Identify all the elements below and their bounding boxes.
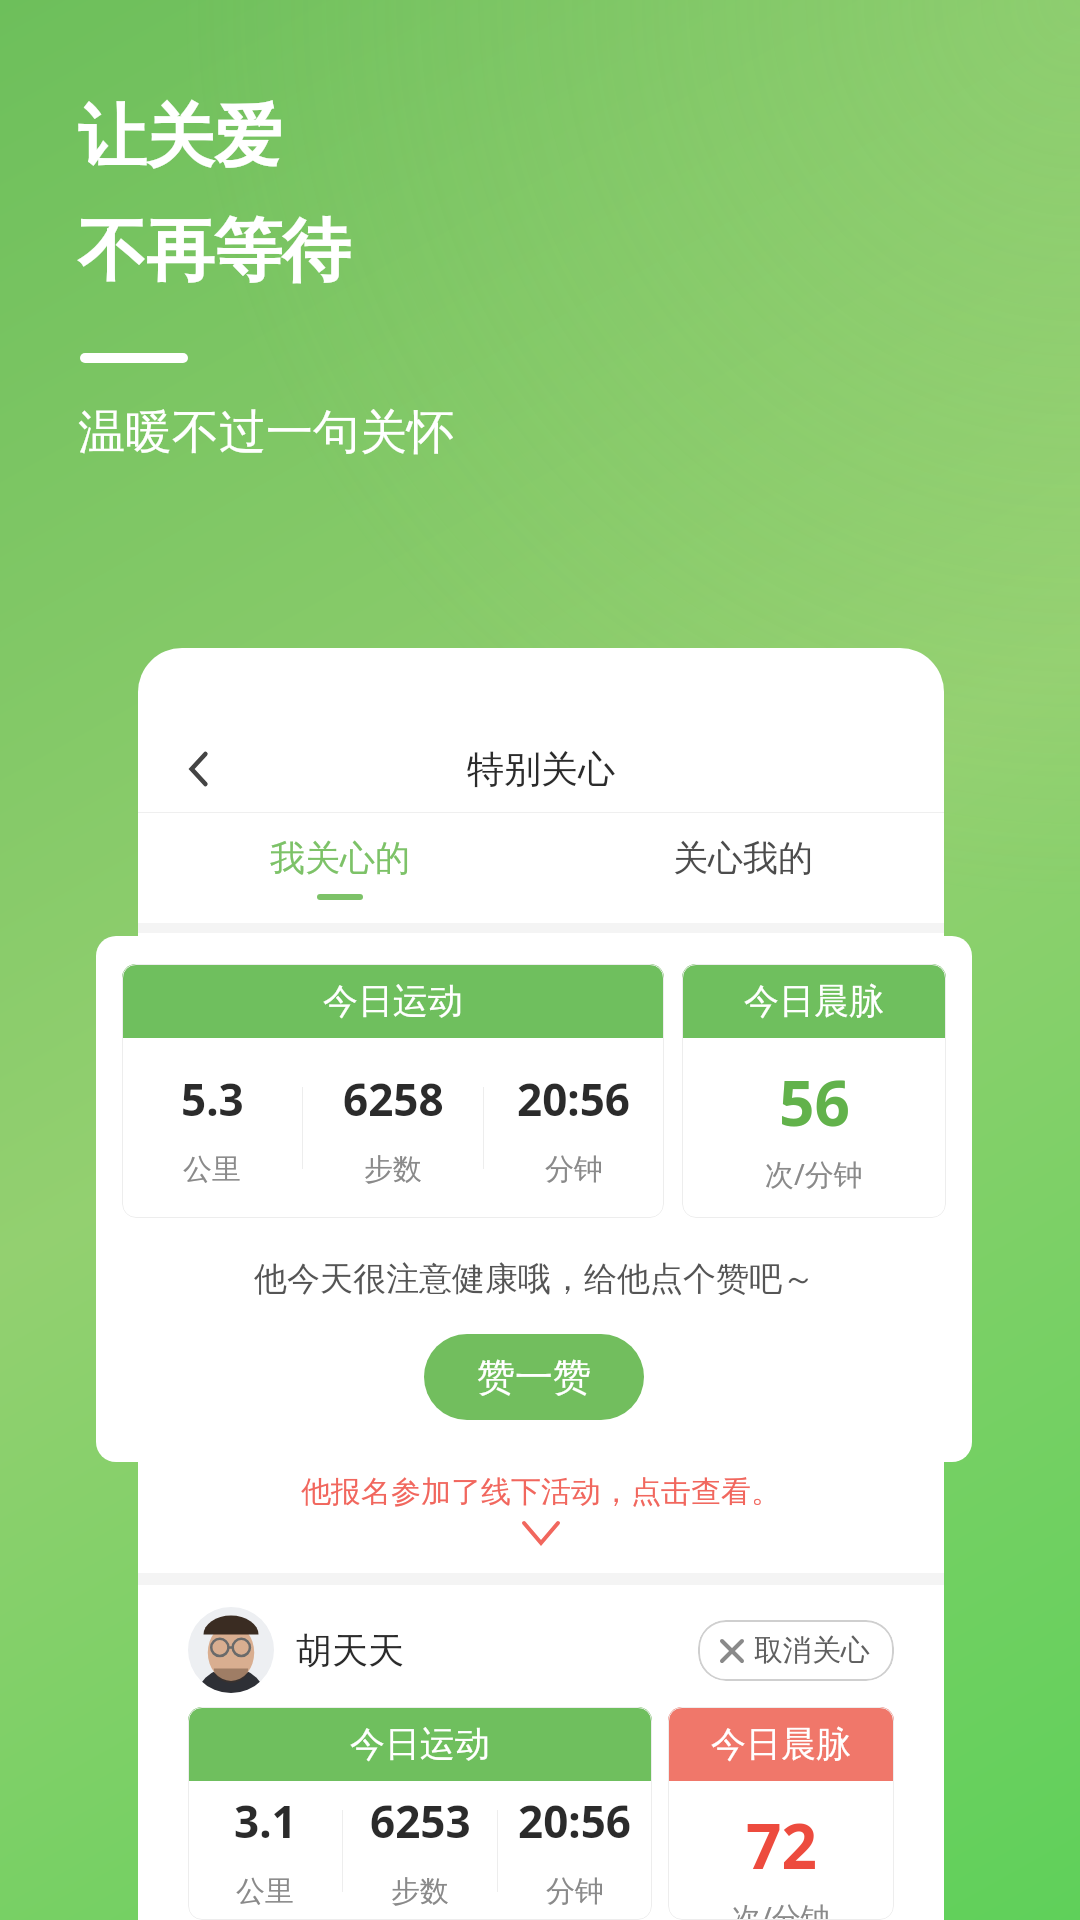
staticText: 72 (746, 1803, 817, 1887)
button[interactable]: Back (168, 737, 232, 801)
staticText: 6253 (370, 1791, 471, 1851)
staticText: 分钟 (546, 1873, 604, 1910)
staticText: 3.1 (234, 1791, 297, 1851)
staticText: 特别关心 (467, 746, 615, 793)
staticText: 分钟 (545, 1151, 603, 1188)
staticText: 公里 (183, 1151, 241, 1188)
staticText: 今日运动 (350, 1722, 490, 1766)
staticText: 次/分钟 (732, 1897, 830, 1920)
staticText: 5.3 (181, 1069, 244, 1129)
button[interactable]: 赞一赞 (424, 1334, 644, 1420)
button[interactable]: 今日晨脉 (682, 964, 946, 1218)
staticText: 赞一赞 (477, 1353, 591, 1401)
staticText: 20:56 (517, 1069, 631, 1129)
staticText: 今日晨脉 (744, 979, 884, 1023)
button[interactable]: 今日运动 (188, 1707, 652, 1920)
button[interactable]: 我关心的 (138, 813, 541, 923)
staticText: 今日运动 (323, 979, 463, 1023)
staticText: 56 (779, 1060, 850, 1144)
staticText: 他报名参加了线下活动，点击查看。 (301, 1473, 781, 1511)
staticText: 20:56 (518, 1791, 632, 1851)
button[interactable]: 他报名参加了线下活动，点击查看。 (166, 1441, 916, 1573)
staticText: 关心我的 (673, 836, 813, 880)
button[interactable]: 取消关心 (698, 1620, 894, 1681)
staticText: 让关爱 (78, 95, 282, 181)
button[interactable]: 关心我的 (541, 813, 944, 923)
staticText: 他今天很注意健康哦，给他点个赞吧～ (254, 1258, 815, 1300)
staticText: 次/分钟 (765, 1154, 863, 1194)
staticText: 6258 (343, 1069, 444, 1129)
staticText: 步数 (364, 1151, 422, 1188)
staticText: 取消关心 (754, 1632, 870, 1669)
staticText: 公里 (236, 1873, 294, 1910)
staticText: 今日晨脉 (711, 1722, 851, 1766)
staticText: 温暖不过一句关怀 (78, 403, 454, 462)
button[interactable]: 今日运动 (122, 964, 664, 1218)
staticText: 步数 (391, 1873, 449, 1910)
staticText: 不再等待 (78, 209, 350, 295)
staticText: 我关心的 (270, 836, 410, 880)
staticText: 胡天天 (296, 1628, 404, 1673)
button[interactable]: 今日晨脉 (668, 1707, 894, 1920)
